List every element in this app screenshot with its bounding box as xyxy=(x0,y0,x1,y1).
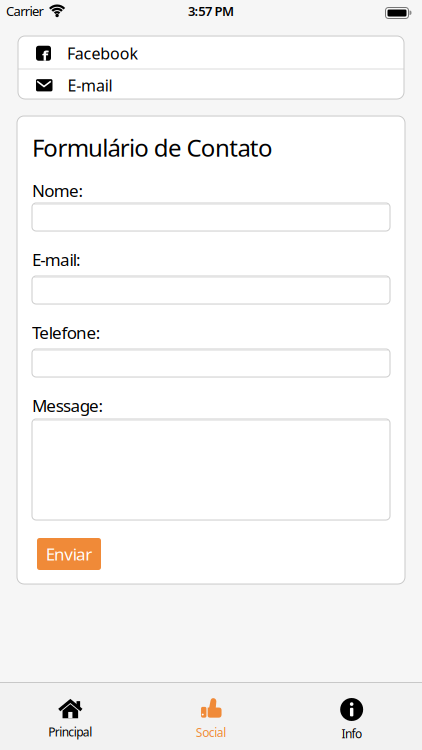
staticText: Telefone: xyxy=(32,321,101,344)
staticText: Formulário de Contato xyxy=(32,131,273,164)
staticText: Info xyxy=(341,725,362,742)
staticText: E-mail xyxy=(67,74,112,96)
staticText: Principal xyxy=(48,724,92,740)
staticText: E-mail: xyxy=(32,248,81,271)
staticText: Social xyxy=(196,724,226,740)
button[interactable]: Principal xyxy=(0,685,141,740)
staticText: Facebook xyxy=(67,42,139,64)
staticText: Nome: xyxy=(32,179,83,202)
button[interactable]: Social xyxy=(141,684,281,740)
button[interactable]: Info xyxy=(281,683,422,742)
button[interactable]: Enviar xyxy=(37,538,101,570)
staticText: 3:57 PM xyxy=(188,2,234,20)
staticText: Enviar xyxy=(46,542,92,566)
staticText: f xyxy=(42,45,48,67)
button[interactable]: f xyxy=(18,36,404,68)
staticText: Carrier xyxy=(6,2,44,20)
button[interactable]: E-mail xyxy=(18,69,404,99)
staticText: Message: xyxy=(32,394,103,417)
